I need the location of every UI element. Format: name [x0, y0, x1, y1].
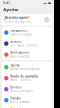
button[interactable]: Pantalla	[2, 95, 52, 106]
staticText: Estilo · colores	[10, 78, 30, 82]
staticText: Sonidos	[10, 86, 21, 89]
staticText: Tonos y vibración	[10, 89, 33, 93]
staticText: 9:41	[3, 1, 10, 5]
staticText: Servicios	[10, 40, 21, 43]
staticText: Transacciones	[10, 29, 27, 32]
staticText: Notificaciones	[10, 51, 29, 54]
staticText: Centro de soporte	[4, 20, 31, 23]
staticText: ¿Necesitas ayuda?	[4, 16, 29, 19]
button[interactable]: Transacciones	[2, 27, 52, 38]
staticText: Administra tus tarjetas	[10, 67, 39, 71]
button[interactable]: Fondo de pantalla	[2, 73, 52, 84]
button[interactable]: Notificaciones	[2, 49, 52, 60]
button[interactable]: ¿Necesitas ayuda?	[2, 14, 52, 25]
staticText: Ayudas	[3, 7, 18, 12]
staticText: Pantalla	[10, 97, 20, 100]
staticText: Pagos y recargas	[10, 33, 31, 36]
staticText: Avisos y alertas	[10, 55, 29, 58]
button[interactable]: Tarjetas	[2, 62, 52, 73]
button[interactable]: Servicios	[2, 38, 52, 49]
staticText: ◗	[46, 2, 47, 4]
staticText: Tarjetas	[10, 64, 19, 67]
staticText: Brillo y tamaño	[10, 100, 30, 104]
staticText: Fondo de pantalla	[10, 75, 38, 78]
staticText: Luz · agua · internet	[10, 44, 38, 47]
staticText: ▁▃▅	[43, 2, 46, 4]
button[interactable]: Sonidos	[2, 84, 52, 95]
button[interactable]: Privacidad	[2, 106, 52, 108]
